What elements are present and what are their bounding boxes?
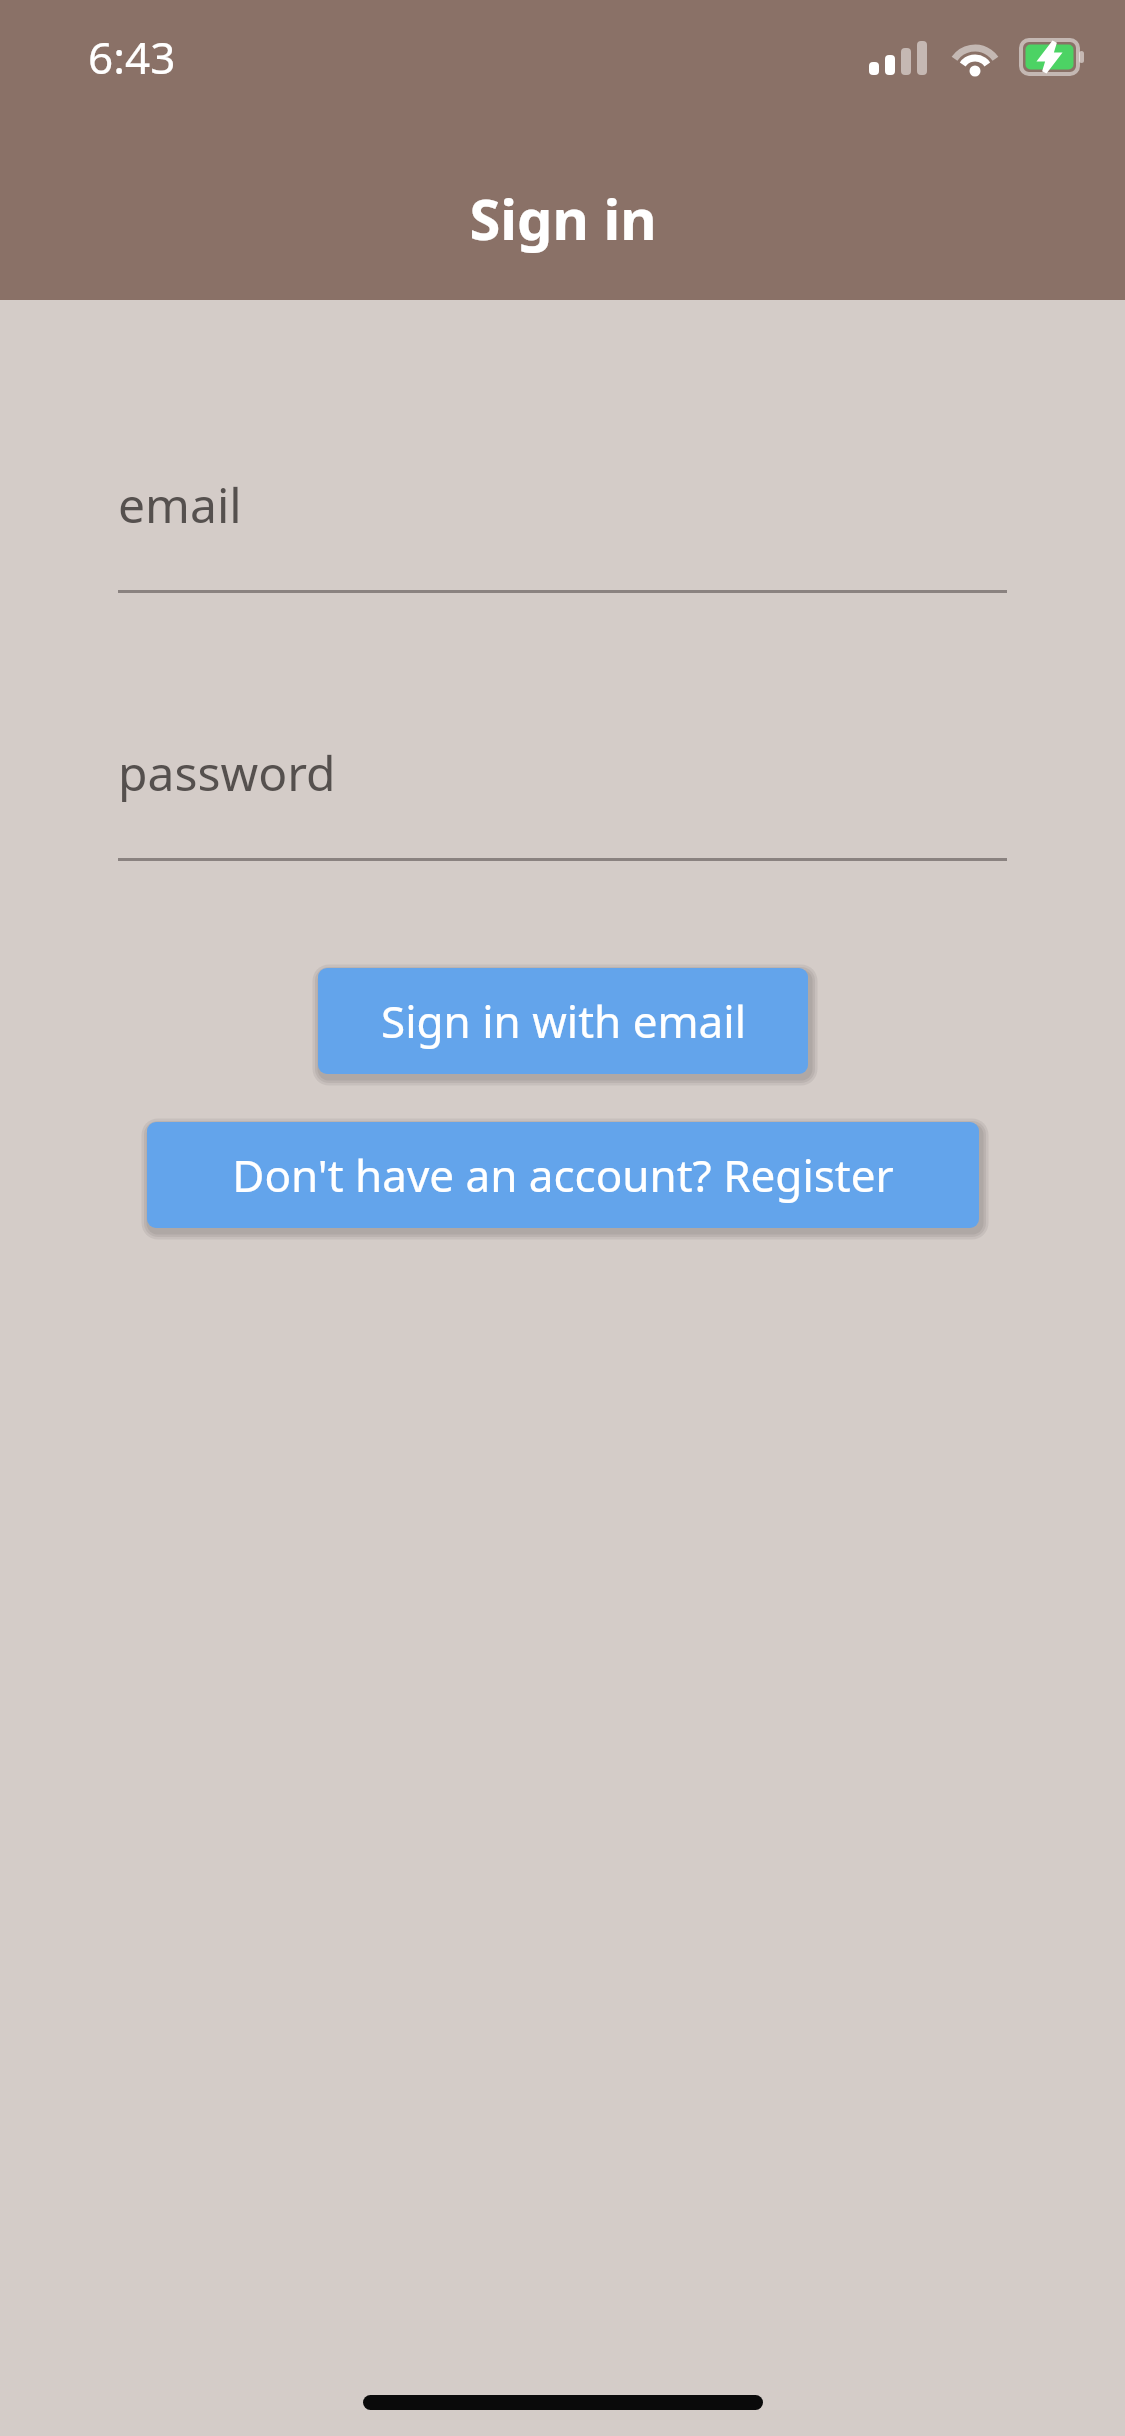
- staticText: Sign in: [469, 180, 657, 256]
- button[interactable]: password: [118, 740, 1007, 880]
- staticText: 6:43: [88, 27, 176, 87]
- staticText: email: [118, 472, 242, 537]
- staticText: password: [118, 740, 336, 805]
- button[interactable]: Sign in with email: [318, 968, 808, 1074]
- staticText: Don't have an account? Register: [232, 1145, 894, 1205]
- staticText: Sign in with email: [381, 991, 746, 1051]
- button[interactable]: email: [118, 472, 1007, 612]
- button[interactable]: Don't have an account? Register: [147, 1122, 979, 1228]
